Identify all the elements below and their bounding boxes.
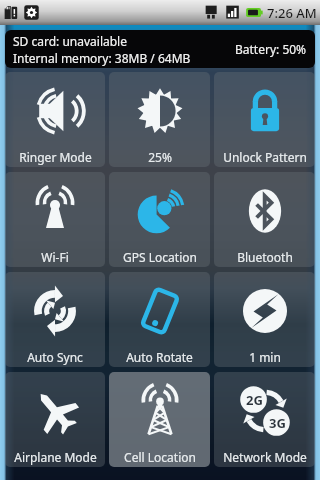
- staticText: SD card: unavailable: [13, 33, 127, 49]
- staticText: Network Mode: [223, 449, 307, 465]
- button[interactable]: Airplane Mode: [5, 372, 105, 467]
- staticText: 1 min: [249, 349, 281, 365]
- button[interactable]: Auto Sync: [5, 272, 105, 367]
- staticText: 3G: [269, 414, 286, 432]
- staticText: Ringer Mode: [19, 149, 92, 165]
- button[interactable]: Wi-Fi: [5, 172, 105, 267]
- staticText: 2G: [246, 391, 263, 409]
- button[interactable]: Auto Rotate: [109, 272, 210, 367]
- button[interactable]: Ringer Mode: [5, 72, 105, 167]
- staticText: Auto Sync: [27, 349, 83, 365]
- staticText: Unlock Pattern: [223, 149, 307, 165]
- staticText: GPS Location: [123, 249, 197, 265]
- button[interactable]: 25%: [109, 72, 210, 167]
- staticText: Internal memory: 38MB / 64MB: [13, 50, 191, 66]
- staticText: Cell Location: [124, 449, 196, 465]
- staticText: 25%: [148, 149, 172, 165]
- staticText: Battery: 50%: [235, 41, 307, 57]
- staticText: 7:26 AM: [267, 4, 317, 22]
- button[interactable]: Unlock Pattern: [214, 72, 315, 167]
- button[interactable]: 2G: [214, 372, 315, 467]
- staticText: Airplane Mode: [14, 449, 97, 465]
- button[interactable]: 1 min: [214, 272, 315, 367]
- button[interactable]: Cell Location: [109, 372, 210, 467]
- staticText: Wi-Fi: [41, 249, 69, 265]
- button[interactable]: GPS Location: [109, 172, 210, 267]
- staticText: Auto Rotate: [126, 349, 193, 365]
- staticText: Bluetooth: [237, 249, 293, 265]
- button[interactable]: Bluetooth: [214, 172, 315, 267]
